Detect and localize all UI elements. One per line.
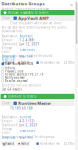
staticText: 4.0.1 (12) xyxy=(19,119,34,123)
staticText: Distribution Groups xyxy=(1,1,44,6)
staticText: View notes xyxy=(19,48,34,52)
staticText: Use 64 devices xyxy=(1,88,21,91)
staticText: Kate Thompson (iOS) xyxy=(5,62,33,66)
staticText: Version xyxy=(1,119,12,123)
button[interactable]: Download xyxy=(1,136,15,140)
staticText: Tester list xyxy=(1,58,14,61)
button[interactable]: Share link xyxy=(19,55,32,59)
staticText: Close xyxy=(2,16,10,20)
staticText: Close this panel when you are done xyxy=(10,21,62,25)
staticText: Runtime Master xyxy=(18,101,51,106)
staticText: Passed xyxy=(5,61,14,64)
button[interactable]: Passed xyxy=(1,141,15,146)
button[interactable]: Remember me xyxy=(36,142,60,145)
button[interactable]: Download xyxy=(1,55,15,59)
staticText: 1.2.4 (88) xyxy=(19,38,34,42)
staticText: Runtime xyxy=(19,115,31,119)
button[interactable]: Remember me xyxy=(36,61,60,64)
button[interactable]: Share link xyxy=(19,136,32,140)
staticText: Infinity xyxy=(5,66,15,70)
staticText: Remember me xyxy=(40,61,60,64)
staticText: Release is available to testers xyxy=(8,11,48,14)
staticText: Select the roll-out schedule xyxy=(1,84,41,87)
staticText: Download xyxy=(1,136,15,140)
button[interactable]: Tester list xyxy=(1,58,14,61)
button[interactable]: Distribute to testers xyxy=(0,94,74,99)
staticText: Remote address 198.51.78 xyxy=(5,73,44,76)
staticText: AppVault xyxy=(19,34,32,38)
button[interactable]: Close xyxy=(69,3,74,7)
button[interactable]: Other xyxy=(64,142,76,145)
staticText: Resolve via email xyxy=(5,79,28,83)
button[interactable]: Failed xyxy=(17,141,30,146)
staticText: AppVault AMP xyxy=(18,15,48,21)
staticText: Notify via email xyxy=(5,76,25,79)
staticText: Application xyxy=(1,34,17,38)
staticText: Tester list is not shared for this group xyxy=(1,135,54,139)
staticText: Jun 2, 2023 xyxy=(19,123,37,127)
staticText: Failed xyxy=(21,61,29,64)
staticText: Distribute to testers xyxy=(8,95,36,98)
staticText: Passed xyxy=(5,142,14,145)
staticText: Sending invites requires a release xyxy=(1,7,49,11)
staticText: Distributed xyxy=(1,123,17,127)
staticText: Release notes xyxy=(1,46,12,53)
staticText: Application xyxy=(1,115,17,119)
button[interactable]: Passed xyxy=(1,60,15,65)
staticText: Testers who have installed this build xyxy=(1,54,52,58)
button[interactable]: Failed xyxy=(17,60,30,65)
staticText: Preview 2.008 xyxy=(5,70,24,73)
staticText: Distributed xyxy=(1,42,17,46)
button[interactable]: Release is available to testers xyxy=(0,10,74,15)
staticText: Release notes xyxy=(1,127,12,134)
staticText: Remember me xyxy=(40,142,60,145)
staticText: Version xyxy=(1,38,12,42)
staticText: Jun 12, 2023 xyxy=(19,42,39,46)
staticText: Share link xyxy=(19,136,32,140)
button[interactable]: Other xyxy=(64,61,76,64)
staticText: 70.189.60.188 xyxy=(10,107,33,110)
staticText: You can add more testers by sharing the … xyxy=(1,26,66,33)
staticText: View notes xyxy=(19,129,34,133)
staticText: Close xyxy=(2,101,10,105)
staticText: Other xyxy=(68,61,76,64)
staticText: Other xyxy=(68,142,76,145)
staticText: Failed xyxy=(21,142,29,145)
staticText: Share link xyxy=(19,55,32,59)
staticText: Download xyxy=(1,55,15,59)
